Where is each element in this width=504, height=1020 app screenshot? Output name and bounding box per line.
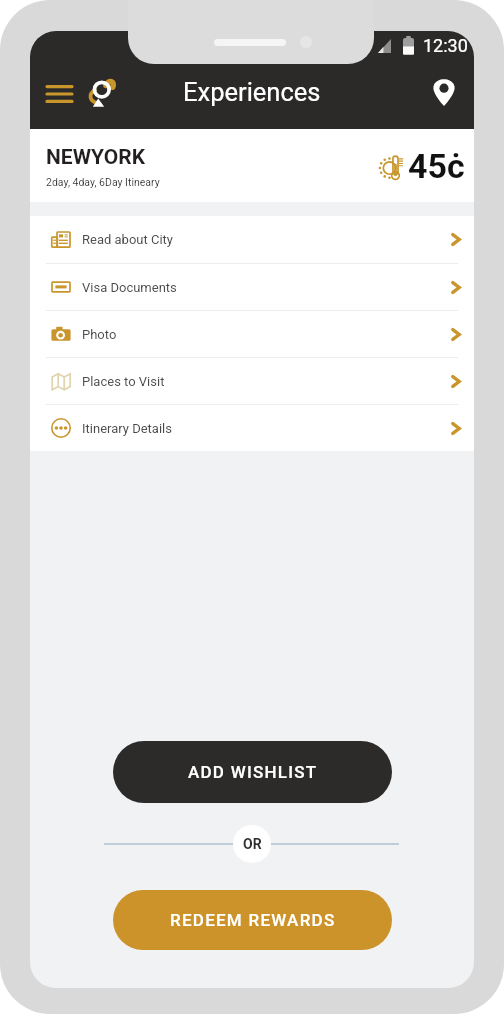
staticText: Itinerary Details bbox=[82, 421, 172, 436]
button[interactable]: Places to Visit bbox=[30, 358, 474, 404]
staticText: 12:30 bbox=[423, 35, 468, 56]
staticText: REDEEM REWARDS bbox=[170, 910, 336, 930]
staticText: Photo bbox=[82, 327, 117, 342]
button[interactable]: Photo bbox=[30, 311, 474, 357]
button[interactable]: Menu bbox=[43, 78, 75, 110]
staticText: Visa Documents bbox=[82, 280, 177, 295]
staticText: OR bbox=[243, 836, 262, 852]
button[interactable]: REDEEM REWARDS bbox=[113, 890, 392, 950]
button[interactable]: Visa Documents bbox=[30, 264, 474, 310]
button[interactable]: Location bbox=[427, 75, 461, 109]
staticText: ADD WISHLIST bbox=[188, 762, 318, 782]
staticText: Read about City bbox=[82, 232, 173, 247]
button[interactable]: Read about City bbox=[30, 216, 474, 263]
button[interactable]: Itinerary Details bbox=[30, 405, 474, 451]
button[interactable]: ADD WISHLIST bbox=[113, 741, 392, 803]
staticText: Experiences bbox=[183, 77, 321, 107]
staticText: 45ċ bbox=[408, 146, 465, 186]
staticText: NEWYORK bbox=[46, 145, 145, 170]
staticText: 2day, 4day, 6Day Itineary bbox=[46, 176, 160, 188]
staticText: Places to Visit bbox=[82, 374, 165, 389]
button[interactable]: Brand logo bbox=[78, 70, 122, 114]
